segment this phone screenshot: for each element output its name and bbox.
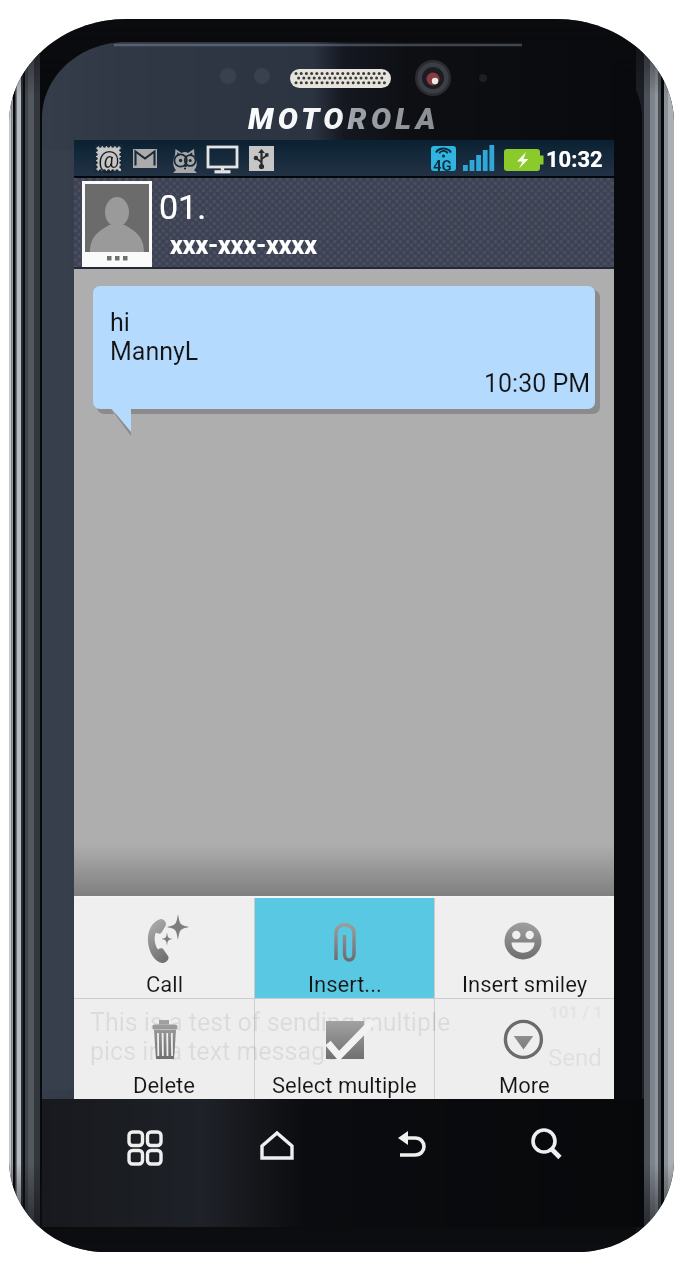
staticText: Call (146, 972, 183, 998)
button[interactable]: Select multiple (255, 999, 434, 1099)
button[interactable]: Search (479, 1105, 614, 1185)
staticText: xxx-xxx-xxxx (170, 231, 317, 260)
button[interactable]: Home (209, 1105, 344, 1185)
staticText: pics in a text message. (90, 1037, 345, 1066)
button[interactable]: Back (344, 1105, 479, 1185)
staticText: Select multiple (272, 1073, 417, 1099)
staticText: hi (110, 308, 130, 337)
staticText: Insert... (308, 972, 382, 998)
staticText: This is a test of sending multiple (90, 1008, 451, 1037)
staticText: 01. (159, 187, 207, 227)
button[interactable]: More (435, 999, 614, 1099)
button[interactable]: Menu (74, 1105, 209, 1185)
button[interactable]: Insert smiley (435, 898, 614, 998)
staticText: MOTOROLA (248, 101, 440, 136)
staticText: @ (98, 146, 120, 174)
staticText: 10:30 PM (484, 369, 591, 398)
button[interactable]: Send (541, 1029, 609, 1087)
button[interactable]: Delete (74, 999, 254, 1099)
staticText: 10:32 (546, 147, 603, 173)
staticText: 101 / 1 (549, 1002, 603, 1022)
staticText: More (499, 1073, 550, 1099)
button[interactable]: Insert... (255, 898, 434, 998)
button[interactable]: Call (74, 898, 254, 998)
staticText: Send (548, 1044, 602, 1072)
staticText: Delete (133, 1073, 195, 1099)
staticText: 4G (433, 157, 452, 175)
button[interactable]: 01. (74, 178, 614, 269)
staticText: Insert smiley (462, 972, 588, 998)
staticText: MannyL (110, 337, 199, 366)
